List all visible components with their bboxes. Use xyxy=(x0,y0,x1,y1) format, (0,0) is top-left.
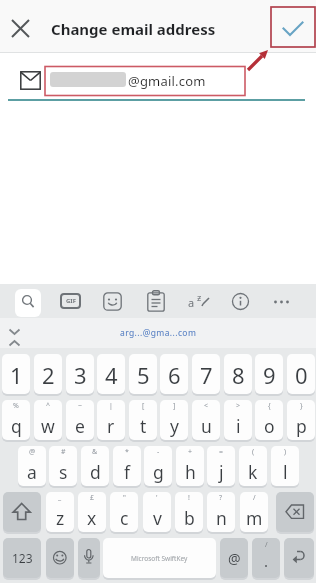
staticText: [ xyxy=(142,401,145,411)
button[interactable]: / xyxy=(240,492,268,532)
button[interactable]: * xyxy=(113,446,141,486)
staticText: w xyxy=(41,414,55,438)
button[interactable] xyxy=(272,292,291,311)
staticText: l xyxy=(283,460,288,484)
button[interactable] xyxy=(8,16,34,42)
staticText: @ xyxy=(228,549,241,568)
staticText: k xyxy=(248,460,258,484)
button[interactable]: 1 xyxy=(2,354,30,394)
staticText: Microsoft SwiftKey xyxy=(131,554,188,563)
staticText: d xyxy=(90,460,101,484)
staticText: 6 xyxy=(168,360,181,390)
button[interactable]: - xyxy=(144,446,172,486)
button[interactable] xyxy=(45,66,245,96)
button[interactable]: £ xyxy=(78,492,106,532)
staticText: ( xyxy=(252,447,255,457)
button[interactable]: % xyxy=(2,400,30,440)
staticText: s xyxy=(59,460,68,484)
button[interactable]: GIF xyxy=(60,293,81,309)
staticText: j xyxy=(219,460,224,484)
button[interactable]: } xyxy=(287,400,315,440)
button[interactable]: _ xyxy=(46,492,74,532)
staticText: GIF xyxy=(66,297,76,305)
button[interactable]: ? xyxy=(207,492,235,532)
button[interactable]: @ xyxy=(220,538,248,578)
staticText: 7 xyxy=(200,360,213,390)
button[interactable] xyxy=(78,538,100,578)
staticText: _ xyxy=(58,493,62,503)
staticText: 0 xyxy=(295,360,308,390)
button[interactable]: & xyxy=(81,446,109,486)
button[interactable]: @ xyxy=(18,446,46,486)
staticText: ] xyxy=(173,401,176,411)
staticText: g xyxy=(153,460,164,484)
button[interactable]: > xyxy=(224,400,252,440)
staticText: @ xyxy=(29,447,36,457)
button[interactable]: 7 xyxy=(192,354,220,394)
button[interactable]: 5 xyxy=(129,354,157,394)
button[interactable]: 123 xyxy=(3,538,41,578)
button[interactable] xyxy=(147,290,165,312)
button[interactable]: ] xyxy=(160,400,188,440)
staticText: f xyxy=(124,460,131,484)
staticText: ! xyxy=(188,493,190,503)
staticText: x xyxy=(87,506,97,530)
button[interactable]: # xyxy=(49,446,77,486)
button[interactable] xyxy=(231,292,250,311)
staticText: e xyxy=(75,414,85,438)
button[interactable]: ' xyxy=(143,492,171,532)
button[interactable]: < xyxy=(192,400,220,440)
button[interactable]: ( xyxy=(239,446,267,486)
staticText: > xyxy=(236,401,241,411)
button[interactable]: 0 xyxy=(287,354,315,394)
button[interactable] xyxy=(15,289,41,317)
button[interactable]: ! xyxy=(175,492,203,532)
staticText: r xyxy=(107,414,115,438)
staticText: i xyxy=(236,414,241,438)
staticText: c xyxy=(120,506,129,530)
staticText: a xyxy=(188,295,195,310)
staticText: - xyxy=(157,447,160,457)
button[interactable]: / xyxy=(252,538,280,578)
button[interactable]: = xyxy=(207,446,235,486)
staticText: p xyxy=(296,414,307,438)
staticText: % xyxy=(13,401,19,411)
staticText: # xyxy=(61,447,66,457)
button[interactable]: a xyxy=(188,290,212,312)
button[interactable]: Microsoft SwiftKey xyxy=(103,538,216,578)
button[interactable]: 9 xyxy=(255,354,283,394)
button[interactable]: ) xyxy=(271,446,299,486)
button[interactable] xyxy=(103,292,122,311)
button[interactable] xyxy=(46,538,74,578)
button[interactable]: + xyxy=(176,446,204,486)
button[interactable]: ^ xyxy=(34,400,62,440)
button[interactable]: 2 xyxy=(34,354,62,394)
button[interactable]: arg...@gma...com xyxy=(120,327,197,339)
staticText: & xyxy=(92,447,98,457)
staticText: v xyxy=(153,506,162,530)
button[interactable] xyxy=(284,538,314,578)
staticText: m xyxy=(246,506,263,530)
button[interactable]: | xyxy=(97,400,125,440)
staticText: ~ xyxy=(78,401,83,411)
button[interactable]: 3 xyxy=(66,354,94,394)
button[interactable]: { xyxy=(255,400,283,440)
staticText: / xyxy=(265,540,268,550)
staticText: ) xyxy=(284,447,287,457)
button[interactable]: [ xyxy=(129,400,157,440)
button[interactable] xyxy=(276,492,314,532)
staticText: | xyxy=(109,401,113,411)
staticText: b xyxy=(184,506,195,530)
staticText: @gmail.com xyxy=(128,72,206,90)
button[interactable]: " xyxy=(110,492,138,532)
staticText: n xyxy=(216,506,227,530)
button[interactable] xyxy=(3,492,41,532)
staticText: / xyxy=(253,493,256,503)
button[interactable] xyxy=(278,14,308,44)
button[interactable]: 4 xyxy=(97,354,125,394)
staticText: " xyxy=(123,493,126,503)
button[interactable]: ~ xyxy=(66,400,94,440)
staticText: * xyxy=(125,447,129,457)
button[interactable]: 6 xyxy=(160,354,188,394)
button[interactable]: 8 xyxy=(224,354,252,394)
